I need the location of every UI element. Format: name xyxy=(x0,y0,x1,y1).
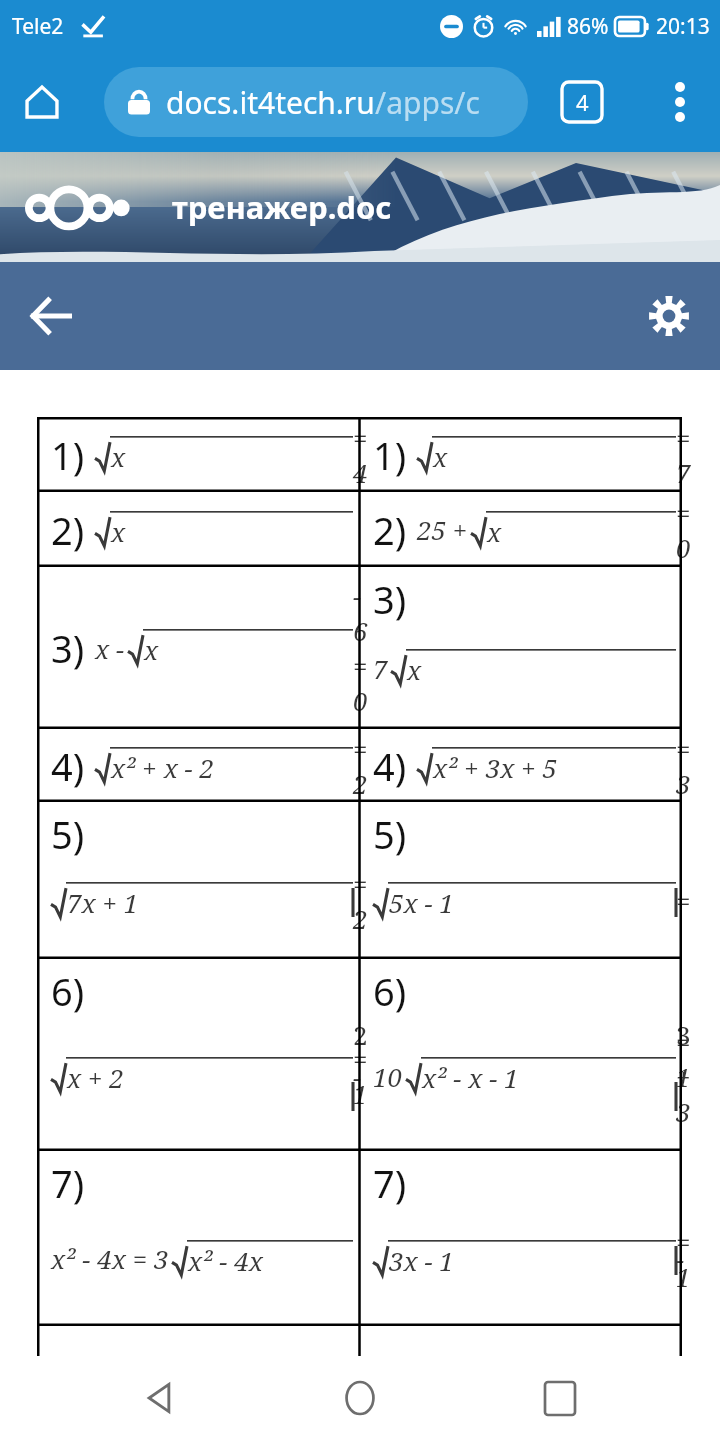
staticText: 3) xyxy=(373,573,407,625)
staticText: x xyxy=(111,439,126,474)
staticText: x xyxy=(433,439,448,474)
staticText: x xyxy=(144,632,159,667)
button[interactable]: Back xyxy=(120,1358,200,1438)
staticText: 2) xyxy=(51,504,85,556)
staticText: x xyxy=(407,652,422,687)
staticText: x + 2 xyxy=(67,1060,124,1095)
staticText: 86% xyxy=(567,12,609,41)
staticText: 7) xyxy=(373,1157,407,1209)
staticText: 7x + 1 xyxy=(67,885,139,920)
staticText: /apps/c xyxy=(375,82,480,123)
staticText: docs.it4tech.ru xyxy=(166,82,375,123)
staticText: x² + 3x + 5 xyxy=(433,750,557,785)
staticText: 2) xyxy=(373,504,407,556)
button[interactable]: Back xyxy=(16,281,86,351)
button[interactable]: docs.it4tech.ru xyxy=(104,67,528,137)
staticText: 3) xyxy=(51,622,85,674)
staticText: тренажер.doc xyxy=(172,186,392,228)
staticText: 5) xyxy=(51,808,85,860)
staticText: x xyxy=(487,514,502,549)
staticText: 25 + xyxy=(417,512,468,547)
staticText: 4) xyxy=(373,740,407,792)
staticText: Tele2 xyxy=(12,12,64,41)
staticText: x² - 4x = 3 xyxy=(51,1241,169,1276)
staticText: 10 xyxy=(373,1059,403,1094)
button[interactable]: Home xyxy=(14,74,70,130)
staticText: 3x - 1 xyxy=(389,1243,454,1278)
staticText: x² - 4x xyxy=(188,1243,263,1278)
staticText: 1) xyxy=(373,429,407,481)
button[interactable]: Settings xyxy=(634,281,704,351)
staticText: 7 xyxy=(373,651,388,686)
staticText: 6) xyxy=(373,965,407,1017)
staticText: x xyxy=(111,514,126,549)
button[interactable]: Tabs xyxy=(550,70,614,134)
button[interactable]: Recent apps xyxy=(520,1358,600,1438)
staticText: 4) xyxy=(51,740,85,792)
staticText: 6) xyxy=(51,965,85,1017)
button[interactable]: More options xyxy=(650,72,710,132)
staticText: 5) xyxy=(373,808,407,860)
staticText: 7) xyxy=(51,1157,85,1209)
staticText: 5x - 1 xyxy=(389,885,454,920)
staticText: x² - x - 1 xyxy=(422,1060,519,1095)
staticText: 4 xyxy=(576,87,589,117)
staticText: x² + x - 2 xyxy=(111,750,214,785)
staticText: 20:13 xyxy=(656,12,710,41)
staticText: x - xyxy=(95,631,125,666)
staticText: 1) xyxy=(51,429,85,481)
button[interactable]: Home xyxy=(320,1358,400,1438)
